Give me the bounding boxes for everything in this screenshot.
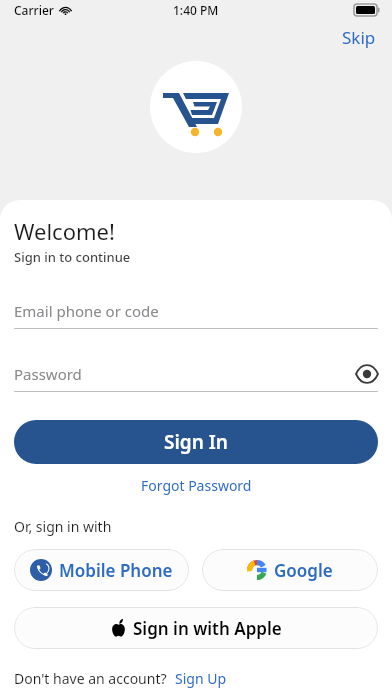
staticText: Welcome! — [14, 216, 115, 246]
button[interactable]: Mobile Phone — [14, 549, 189, 591]
staticText: Sign Up — [175, 669, 227, 688]
staticText: Forgot Password — [141, 476, 252, 495]
button[interactable]: Sign in with Apple — [14, 607, 378, 649]
button[interactable]: Forgot Password — [137, 472, 256, 499]
staticText: Password — [14, 364, 356, 384]
button[interactable]: Google — [202, 549, 378, 591]
staticText: Sign In — [164, 429, 228, 455]
staticText: Carrier — [14, 2, 54, 18]
staticText: Sign in with Apple — [133, 617, 282, 640]
staticText: Or, sign in with — [14, 517, 112, 536]
staticText: Sign in to continue — [14, 248, 131, 266]
button[interactable]: Skip — [326, 20, 392, 55]
staticText: 1:40 PM — [173, 2, 219, 18]
button[interactable]: Sign In — [14, 420, 378, 464]
staticText: Email phone or code — [14, 301, 378, 321]
button[interactable]: Email phone or code — [14, 301, 378, 329]
button[interactable]: Sign Up — [167, 665, 235, 692]
staticText: Skip — [342, 26, 376, 49]
button[interactable]: Password — [14, 364, 378, 392]
staticText: Google — [274, 559, 333, 582]
staticText: Mobile Phone — [59, 559, 173, 582]
staticText: Don't have an account? — [14, 669, 167, 688]
other: Show password — [356, 367, 378, 381]
